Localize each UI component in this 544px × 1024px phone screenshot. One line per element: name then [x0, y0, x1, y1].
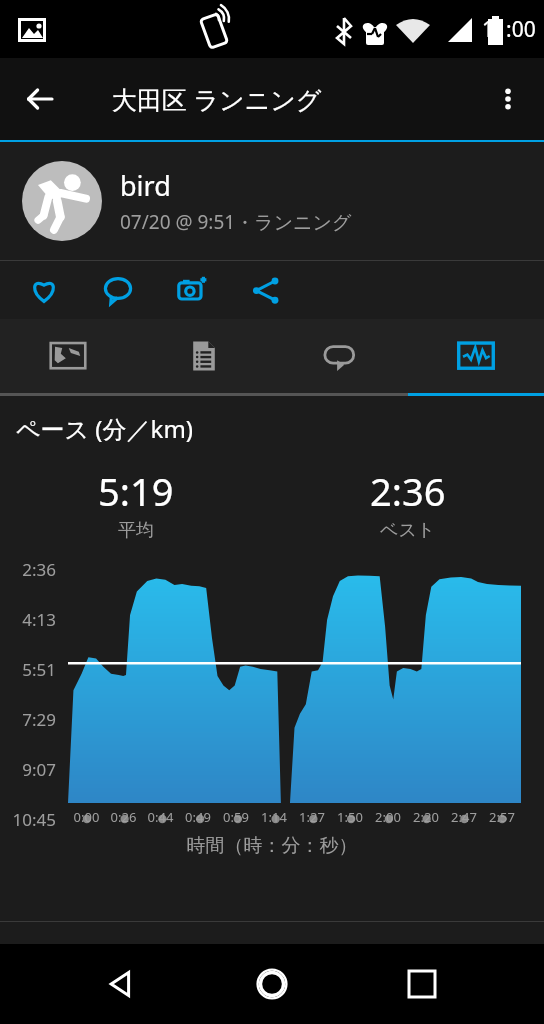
staticText: bird: [120, 167, 171, 204]
button[interactable]: Charts: [408, 319, 544, 393]
staticText: 1:27: [293, 808, 331, 826]
staticText: 4:13: [0, 608, 56, 631]
staticText: ペース (分／km): [16, 412, 194, 445]
button[interactable]: Home: [244, 956, 300, 1012]
staticText: 2:47: [445, 808, 483, 826]
staticText: 2:57: [483, 808, 521, 826]
staticText: 0:00: [68, 808, 105, 826]
button[interactable]: Back: [16, 75, 64, 123]
button[interactable]: More options: [484, 75, 532, 123]
staticText: 0:49: [179, 808, 217, 826]
staticText: 0:44: [142, 808, 179, 826]
staticText: 9:07: [0, 758, 56, 781]
staticText: 2:36: [0, 558, 56, 581]
button[interactable]: Share: [244, 268, 288, 312]
staticText: 大田区 ランニング: [112, 82, 322, 116]
staticText: 11:00: [482, 15, 536, 44]
button[interactable]: Laps: [272, 319, 408, 393]
button[interactable]: Recents: [394, 956, 450, 1012]
button[interactable]: bird: [0, 142, 544, 260]
staticText: 0:59: [217, 808, 255, 826]
staticText: 時間（時：分：秒）: [0, 834, 544, 858]
button[interactable]: Add photo: [170, 268, 214, 312]
staticText: 07/20 @ 9:51・ランニング: [120, 209, 352, 235]
staticText: 2:00: [369, 808, 407, 826]
button[interactable]: Details: [136, 319, 272, 393]
staticText: 1:14: [255, 808, 293, 826]
staticText: 0:26: [105, 808, 142, 826]
button[interactable]: Comment: [96, 268, 140, 312]
staticText: 5:51: [0, 658, 56, 681]
staticText: 10:45: [0, 808, 56, 828]
staticText: 1:50: [331, 808, 369, 826]
button[interactable]: Like: [22, 268, 66, 312]
button[interactable]: Back: [94, 956, 150, 1012]
staticText: 7:29: [0, 708, 56, 731]
staticText: 平均: [118, 519, 154, 542]
button[interactable]: Map: [0, 319, 136, 393]
staticText: 5:19: [98, 465, 174, 517]
staticText: 2:20: [407, 808, 445, 826]
staticText: 2:36: [370, 465, 446, 517]
staticText: ベスト: [380, 519, 436, 542]
